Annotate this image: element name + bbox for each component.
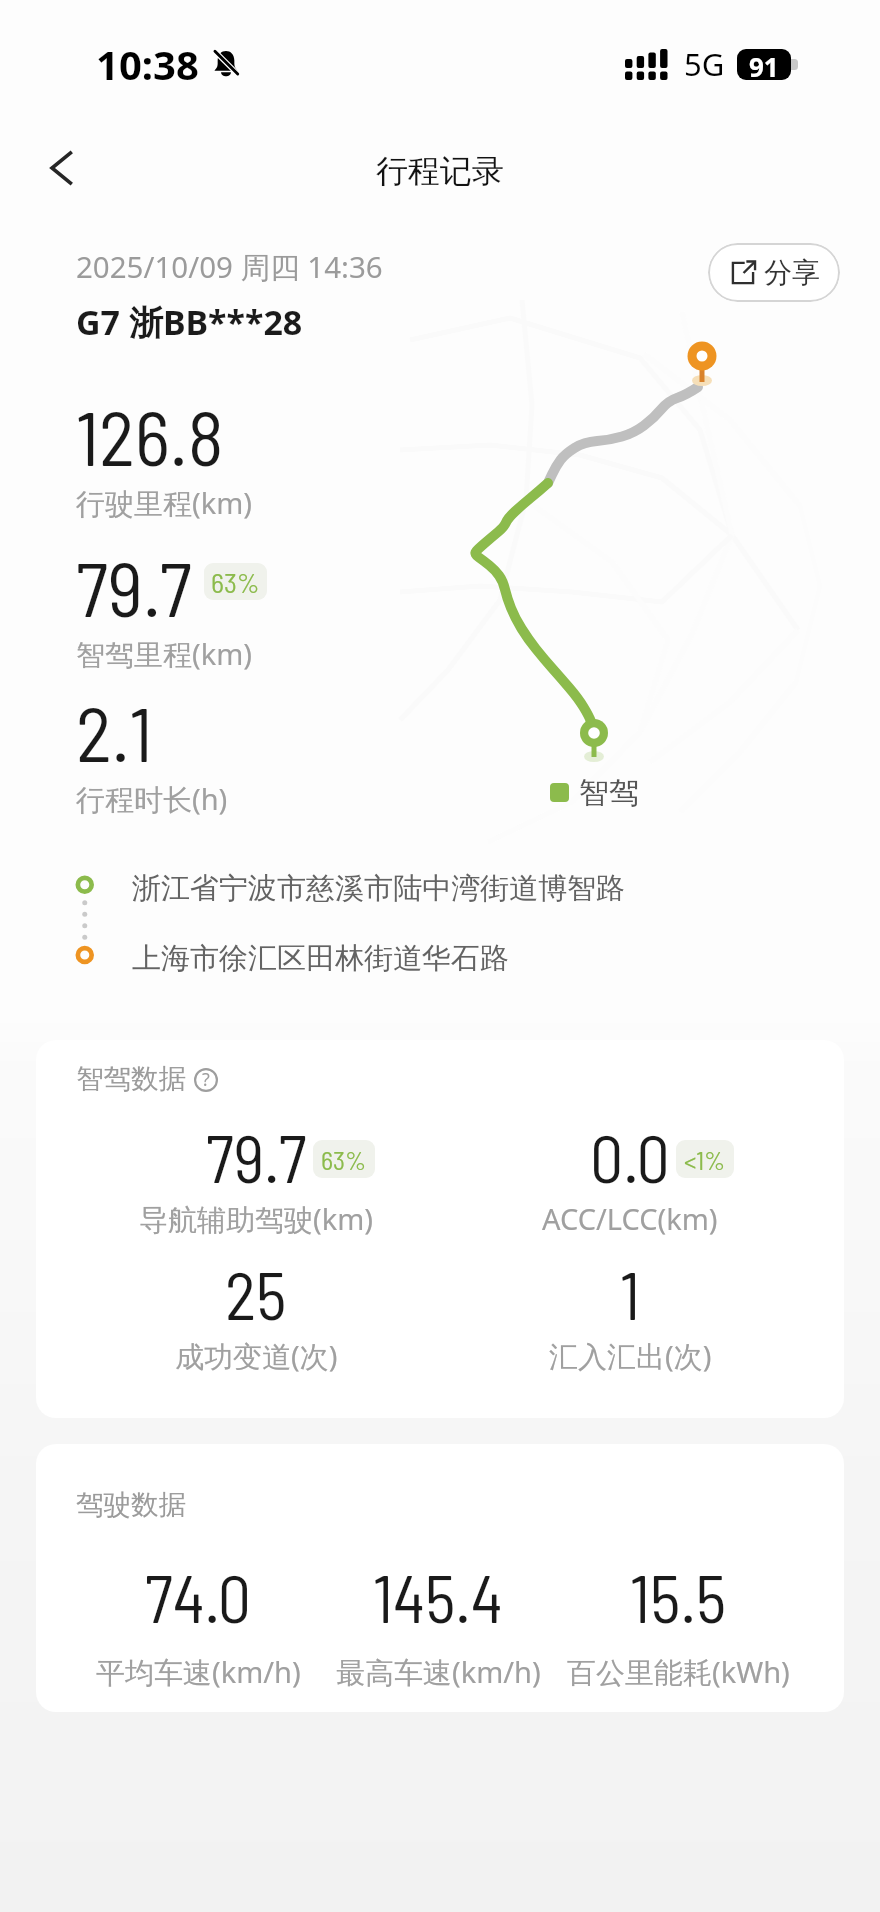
staticText: <1% — [684, 1144, 726, 1175]
staticText: 74.0 — [145, 1557, 251, 1636]
staticText: 行程时长(h) — [76, 779, 228, 819]
staticText: 最高车速(km/h) — [336, 1652, 541, 1692]
staticText: 126.8 — [76, 390, 224, 481]
staticText: 63% — [321, 1144, 367, 1175]
button[interactable]: 说明 — [194, 1068, 218, 1092]
staticText: 行程记录 — [376, 151, 504, 191]
staticText: 63% — [211, 565, 260, 599]
staticText: 汇入汇出(次) — [549, 1336, 712, 1376]
staticText: 0.0 — [590, 1117, 670, 1196]
staticText: 驾驶数据 — [76, 1488, 186, 1523]
staticText: 2.1 — [76, 686, 153, 777]
staticText: 分享 — [764, 255, 820, 290]
staticText: 智驾数据 — [76, 1062, 186, 1097]
staticText: 百公里能耗(kWh) — [567, 1652, 790, 1692]
staticText: 1 — [620, 1254, 640, 1333]
staticText: 浙江省宁波市慈溪市陆中湾街道博智路 — [132, 870, 625, 907]
staticText: 15.5 — [630, 1557, 727, 1636]
staticText: 145.4 — [373, 1557, 503, 1636]
staticText: 2025/10/09 周四 14:36 — [76, 246, 383, 286]
staticText: 智驾里程(km) — [76, 634, 253, 674]
staticText: 79.7 — [206, 1117, 307, 1196]
staticText: 91 — [749, 49, 779, 80]
staticText: ? — [202, 1067, 210, 1091]
staticText: 行驶里程(km) — [76, 483, 253, 523]
staticText: 79.7 — [76, 541, 192, 632]
staticText: 平均车速(km/h) — [96, 1652, 301, 1692]
staticText: 成功变道(次) — [175, 1336, 338, 1376]
staticText: 10:38 — [96, 37, 199, 91]
button[interactable]: 分享 — [708, 243, 840, 302]
staticText: 上海市徐汇区田林街道华石路 — [132, 940, 509, 977]
staticText: G7 浙BB***28 — [76, 299, 303, 345]
staticText: 5G — [684, 43, 725, 85]
staticText: 智驾 — [579, 774, 639, 812]
button[interactable]: 返回 — [35, 140, 91, 196]
staticText: 导航辅助驾驶(km) — [139, 1199, 374, 1239]
staticText: ACC/LCC(km) — [542, 1199, 718, 1238]
staticText: 25 — [225, 1254, 287, 1333]
